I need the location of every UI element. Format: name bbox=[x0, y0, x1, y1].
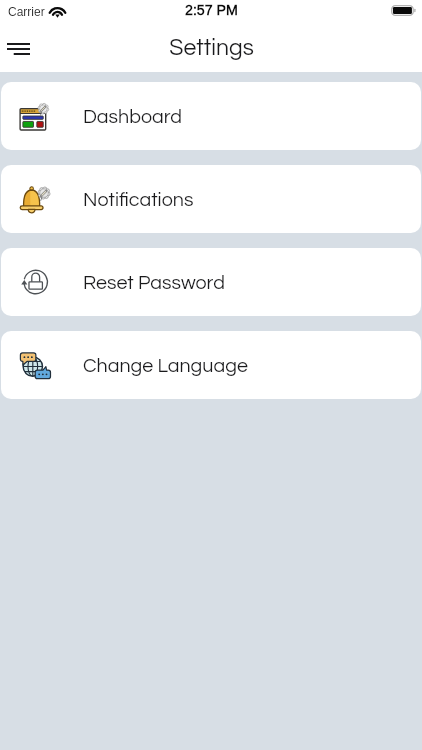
button[interactable]: Reset Password bbox=[1, 248, 421, 316]
button[interactable]: Change Language bbox=[1, 331, 421, 399]
staticText: 2:57 PM bbox=[185, 2, 238, 18]
staticText: Settings bbox=[169, 36, 254, 60]
button[interactable]: Menu bbox=[0, 25, 36, 69]
staticText: Carrier bbox=[8, 5, 45, 18]
staticText: Change Language bbox=[83, 356, 248, 376]
button[interactable]: Dashboard bbox=[1, 82, 421, 150]
staticText: Dashboard bbox=[83, 107, 182, 127]
staticText: Reset Password bbox=[83, 273, 225, 293]
staticText: Notifications bbox=[83, 190, 194, 210]
button[interactable]: Notifications bbox=[1, 165, 421, 233]
